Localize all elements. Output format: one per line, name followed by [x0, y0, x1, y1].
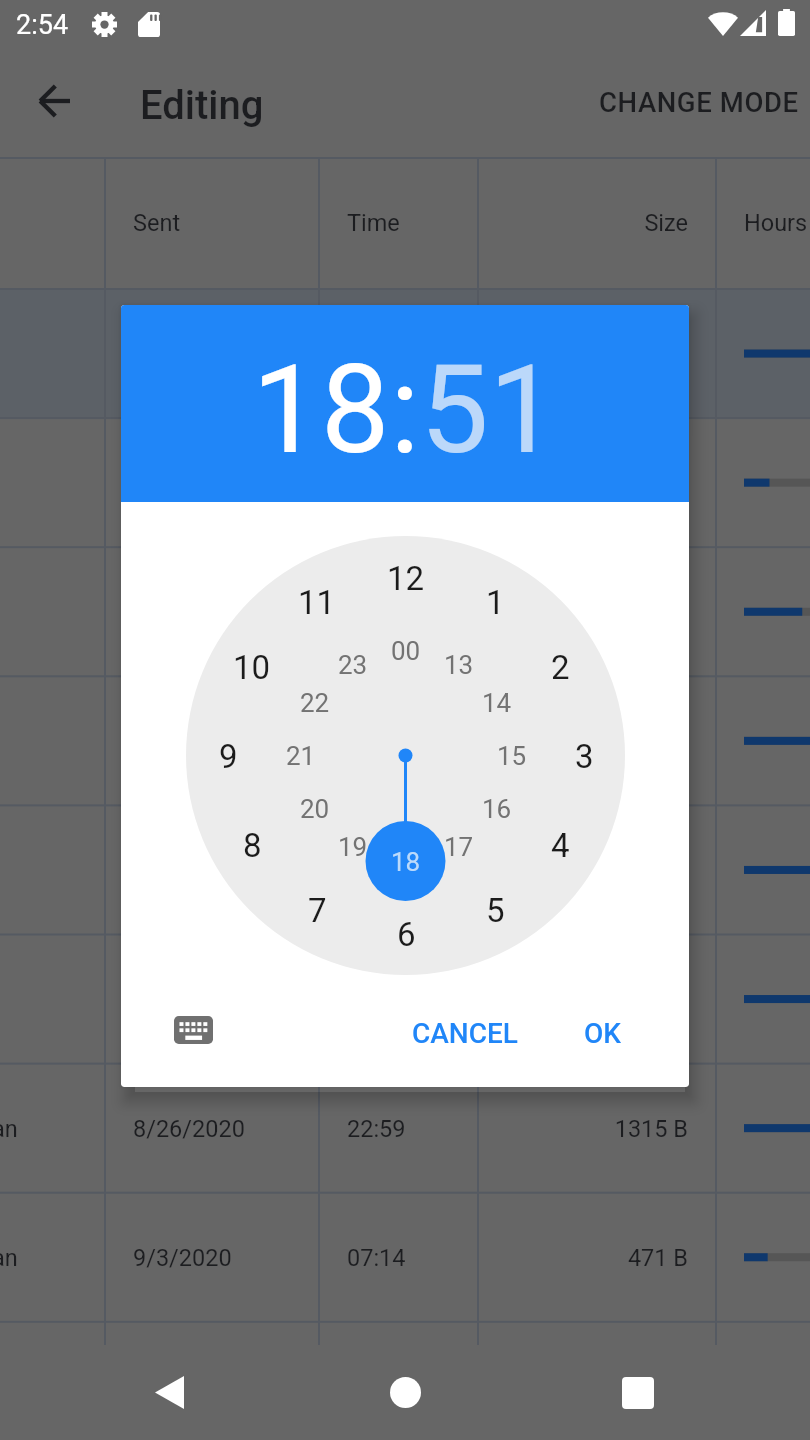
- staticText: 19: [338, 832, 368, 862]
- button[interactable]: 1: [467, 574, 523, 630]
- staticText: 7: [308, 891, 327, 930]
- staticText: 4: [551, 826, 570, 865]
- button[interactable]: 12: [378, 550, 434, 606]
- staticText: 3: [575, 737, 594, 776]
- button[interactable]: 20: [287, 781, 343, 837]
- staticText: 6: [397, 915, 416, 954]
- staticText: 22:59: [347, 1115, 406, 1143]
- staticText: 9/3/2020: [133, 1244, 232, 1272]
- staticText: 22: [300, 688, 330, 718]
- button[interactable]: 15: [484, 728, 540, 784]
- button[interactable]: CHANGE MODE: [583, 72, 810, 132]
- staticText: 14: [482, 688, 512, 718]
- staticText: an: [0, 1115, 18, 1143]
- button[interactable]: 2: [532, 639, 588, 695]
- button[interactable]: 00: [378, 623, 434, 679]
- button[interactable]: 4: [532, 817, 588, 873]
- button[interactable]: 18: [378, 834, 434, 890]
- staticText: 10: [233, 648, 271, 687]
- staticText: 8/26/2020: [133, 1115, 245, 1143]
- staticText: :: [390, 338, 420, 482]
- staticText: OK: [584, 1017, 621, 1050]
- button[interactable]: 23: [325, 637, 381, 693]
- button[interactable]: 7: [289, 882, 345, 938]
- staticText: 1315 B: [478, 1115, 688, 1143]
- button[interactable]: Switch to text input mode: [165, 1004, 221, 1056]
- button[interactable]: 9: [200, 728, 256, 784]
- button[interactable]: OK: [568, 1007, 637, 1060]
- button[interactable]: 5: [467, 882, 523, 938]
- button[interactable]: 22: [287, 675, 343, 731]
- staticText: an: [0, 1244, 18, 1272]
- button[interactable]: [0, 1064, 810, 1193]
- button[interactable]: 51: [420, 338, 558, 482]
- button[interactable]: 6: [378, 906, 434, 962]
- staticText: Editing: [140, 82, 264, 129]
- staticText: 471 B: [478, 1244, 688, 1272]
- button[interactable]: Navigate up: [18, 65, 90, 137]
- button[interactable]: 8: [224, 817, 280, 873]
- staticText: Hours: [744, 209, 808, 237]
- staticText: 8: [243, 826, 262, 865]
- button[interactable]: 21: [273, 728, 329, 784]
- staticText: 21: [286, 741, 316, 771]
- button[interactable]: 16: [469, 781, 525, 837]
- button[interactable]: Back: [99, 1345, 239, 1440]
- button[interactable]: CANCEL: [396, 1007, 534, 1060]
- staticText: Size: [478, 209, 688, 237]
- staticText: Time: [347, 209, 400, 237]
- staticText: 12: [387, 559, 425, 598]
- staticText: 00: [391, 636, 421, 666]
- button[interactable]: Recent apps: [568, 1345, 708, 1440]
- staticText: 18: [391, 847, 421, 877]
- button[interactable]: 13: [431, 637, 487, 693]
- staticText: 1: [486, 583, 505, 622]
- staticText: 2: [551, 648, 570, 687]
- button[interactable]: 11: [289, 574, 345, 630]
- button[interactable]: Home: [335, 1345, 475, 1440]
- staticText: 11: [298, 583, 336, 622]
- button[interactable]: 17: [431, 819, 487, 875]
- button[interactable]: 18: [252, 338, 390, 482]
- staticText: 13: [444, 650, 474, 680]
- staticText: Sent: [133, 209, 181, 237]
- staticText: 9: [219, 737, 238, 776]
- button[interactable]: 10: [224, 639, 280, 695]
- staticText: 16: [482, 794, 512, 824]
- staticText: 15: [497, 741, 527, 771]
- button[interactable]: [0, 1193, 810, 1322]
- staticText: 20: [300, 794, 330, 824]
- staticText: 17: [444, 832, 474, 862]
- button[interactable]: 14: [469, 675, 525, 731]
- button[interactable]: 19: [325, 819, 381, 875]
- staticText: 2:54: [16, 9, 69, 41]
- staticText: 07:14: [347, 1244, 406, 1272]
- staticText: 23: [338, 650, 368, 680]
- staticText: CANCEL: [412, 1017, 518, 1050]
- button[interactable]: 3: [556, 728, 612, 784]
- staticText: 5: [486, 891, 505, 930]
- staticText: CHANGE MODE: [599, 86, 799, 118]
